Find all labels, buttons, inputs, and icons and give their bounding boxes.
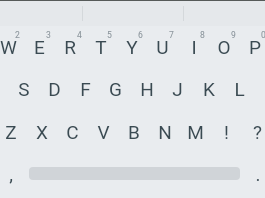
staticText: Z (5, 121, 17, 143)
button[interactable]: K (193, 78, 224, 106)
staticText: E (34, 36, 45, 58)
button[interactable]: N (149, 121, 180, 149)
staticText: W (0, 36, 17, 58)
staticText: C (66, 121, 79, 143)
button[interactable]: E (24, 36, 55, 64)
button[interactable]: P (239, 36, 265, 64)
button[interactable]: W (0, 36, 24, 64)
staticText: X (36, 121, 48, 143)
staticText: O (217, 36, 231, 58)
staticText: 3 (46, 30, 51, 40)
button[interactable]: J (162, 78, 193, 106)
staticText: L (234, 78, 245, 100)
staticText: F (80, 78, 91, 100)
button[interactable]: I (178, 36, 209, 64)
button[interactable]: O (208, 36, 239, 64)
button[interactable]: R (54, 36, 85, 64)
button[interactable]: X (26, 121, 57, 149)
staticText: 9 (231, 30, 236, 40)
button[interactable]: Y (116, 36, 147, 64)
staticText: 2 (15, 30, 20, 40)
staticText: V (97, 121, 110, 143)
button[interactable]: T (85, 36, 116, 64)
staticText: 8 (200, 30, 205, 40)
staticText: H (140, 78, 154, 100)
staticText: D (48, 78, 61, 100)
staticText: 0 (261, 30, 265, 40)
staticText: I (191, 36, 197, 58)
staticText: K (203, 78, 215, 100)
button[interactable]: G (100, 78, 131, 106)
button[interactable]: ! (211, 121, 242, 149)
staticText: Y (126, 36, 138, 58)
staticText: T (95, 36, 107, 58)
staticText: B (128, 121, 140, 143)
button[interactable]: H (131, 78, 162, 106)
button[interactable]: V (88, 121, 119, 149)
button[interactable]: D (39, 78, 70, 106)
staticText: S (18, 78, 30, 100)
button[interactable]: B (118, 121, 149, 149)
button[interactable]: L (224, 78, 255, 106)
button[interactable]: ? (242, 121, 265, 149)
staticText: 6 (138, 30, 143, 40)
staticText: ? (253, 121, 262, 143)
staticText: P (249, 36, 261, 58)
staticText: ! (224, 121, 229, 143)
staticText: N (158, 121, 172, 143)
button[interactable]: U (147, 36, 178, 64)
staticText: , (9, 163, 13, 185)
button[interactable]: Z (0, 121, 26, 149)
staticText: R (64, 36, 76, 58)
button[interactable]: F (70, 78, 101, 106)
staticText: U (156, 36, 169, 58)
staticText: J (172, 78, 183, 100)
staticText: G (109, 78, 122, 100)
button[interactable]: Comma (0, 163, 26, 191)
staticText: 4 (77, 30, 82, 40)
staticText: 7 (169, 30, 174, 40)
button[interactable]: S (8, 78, 39, 106)
staticText: . (255, 163, 261, 185)
button[interactable]: M (180, 121, 211, 149)
staticText: 5 (107, 30, 112, 40)
button[interactable]: C (57, 121, 88, 149)
staticText: M (187, 121, 204, 143)
button[interactable]: Period (242, 163, 265, 191)
